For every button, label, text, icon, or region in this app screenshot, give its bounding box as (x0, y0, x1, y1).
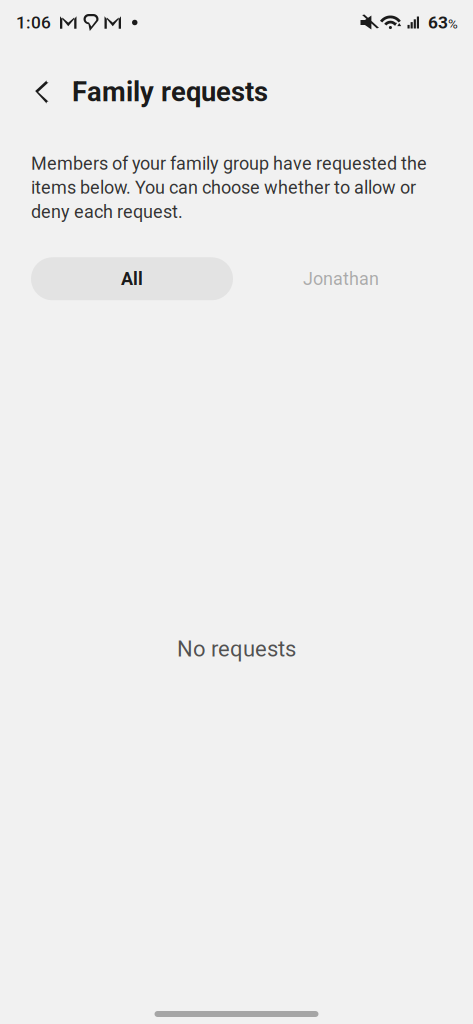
staticText: Jonathan (303, 268, 379, 289)
button[interactable]: All (31, 257, 238, 300)
button[interactable]: Back (20, 64, 64, 120)
staticText: Family requests (72, 76, 268, 108)
staticText: No requests (177, 636, 296, 662)
button[interactable]: Jonathan (238, 257, 444, 300)
staticText: % (448, 16, 458, 32)
staticText: 63 (428, 12, 448, 33)
staticText: Members of your family group have reques… (31, 153, 427, 222)
staticText: All (121, 268, 143, 289)
staticText: 1:06 (16, 12, 51, 33)
